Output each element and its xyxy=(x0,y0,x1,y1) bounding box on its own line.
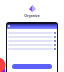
button[interactable]: Get started xyxy=(12,64,52,69)
button[interactable] xyxy=(7,43,57,47)
button[interactable] xyxy=(7,47,57,51)
staticText: Organize xyxy=(24,13,40,18)
button[interactable] xyxy=(7,31,57,35)
button[interactable] xyxy=(7,39,57,43)
button[interactable] xyxy=(7,35,57,39)
button[interactable]: Menu xyxy=(8,25,10,27)
